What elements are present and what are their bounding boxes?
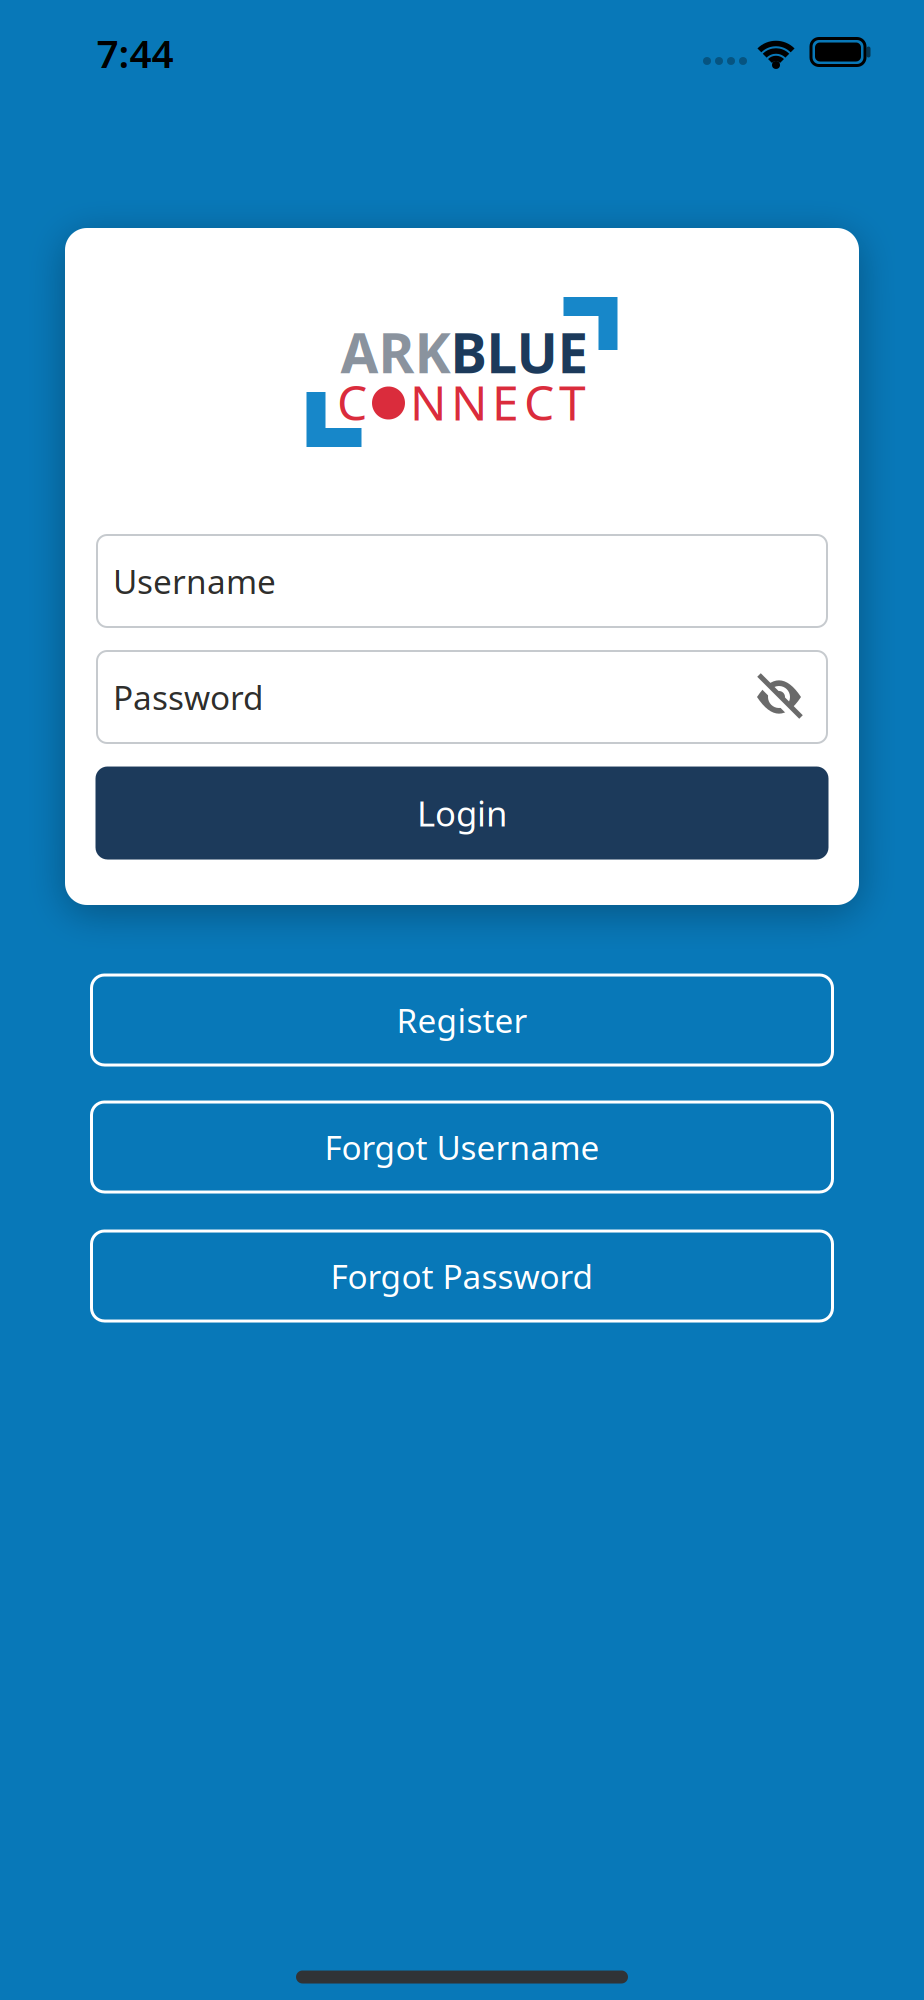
staticText: E <box>492 370 519 434</box>
staticText: Login <box>417 790 507 836</box>
staticText: Password <box>113 675 264 719</box>
staticText: 7:44 <box>96 27 173 79</box>
staticText: Forgot Password <box>330 1254 593 1298</box>
staticText: BLUE <box>450 316 588 388</box>
staticText: N <box>451 370 487 434</box>
textField[interactable]: Username <box>113 559 802 603</box>
button[interactable]: Forgot Password <box>91 1231 832 1321</box>
staticText: Username <box>113 559 276 603</box>
button[interactable]: Login <box>95 766 828 859</box>
staticText: C <box>337 370 367 434</box>
button[interactable]: Show password <box>756 674 802 720</box>
button[interactable]: Register <box>91 975 832 1065</box>
staticText: T <box>559 370 586 434</box>
staticText: C <box>524 370 554 434</box>
textField[interactable]: Password <box>113 675 756 719</box>
staticText: ARK <box>340 316 450 388</box>
button[interactable]: Forgot Username <box>91 1102 832 1192</box>
staticText: Register <box>396 998 527 1042</box>
staticText: Forgot Username <box>324 1125 599 1169</box>
staticText: N <box>410 370 446 434</box>
